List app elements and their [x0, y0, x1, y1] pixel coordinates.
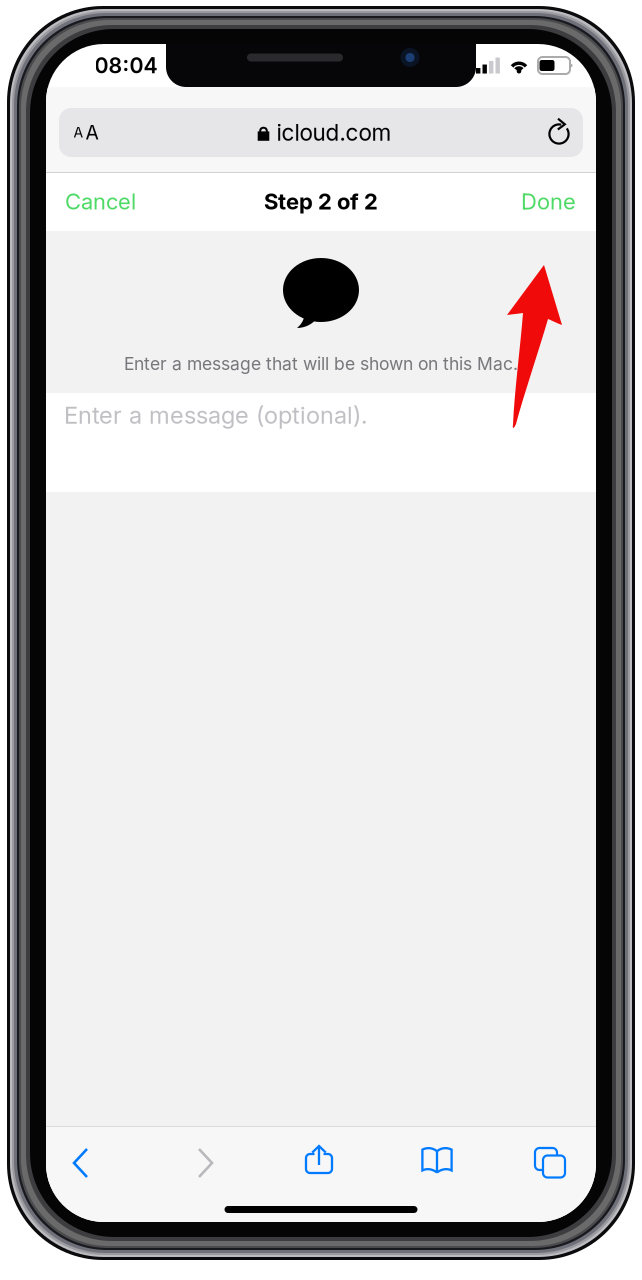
button[interactable]: Back — [46, 1126, 118, 1200]
button[interactable]: Tabs — [526, 1126, 574, 1200]
button[interactable]: Share — [290, 1126, 348, 1200]
button[interactable]: Reload — [535, 108, 583, 157]
staticText: Cancel — [65, 188, 136, 215]
staticText: icloud.com — [276, 119, 391, 146]
button[interactable]: Done — [521, 172, 596, 231]
staticText: Done — [521, 188, 576, 215]
staticText: 08:04 — [94, 53, 157, 78]
staticText: Step 2 of 2 — [264, 188, 378, 215]
staticText: Enter a message (optional). — [64, 401, 367, 429]
staticText: A — [85, 121, 98, 144]
button[interactable]: Cancel — [46, 172, 136, 231]
button[interactable]: Forward — [118, 1126, 290, 1200]
staticText: Enter a message that will be shown on th… — [124, 353, 518, 374]
button[interactable]: Bookmarks — [348, 1126, 526, 1200]
button[interactable]: Text size — [59, 108, 113, 157]
staticText: A — [73, 124, 83, 141]
